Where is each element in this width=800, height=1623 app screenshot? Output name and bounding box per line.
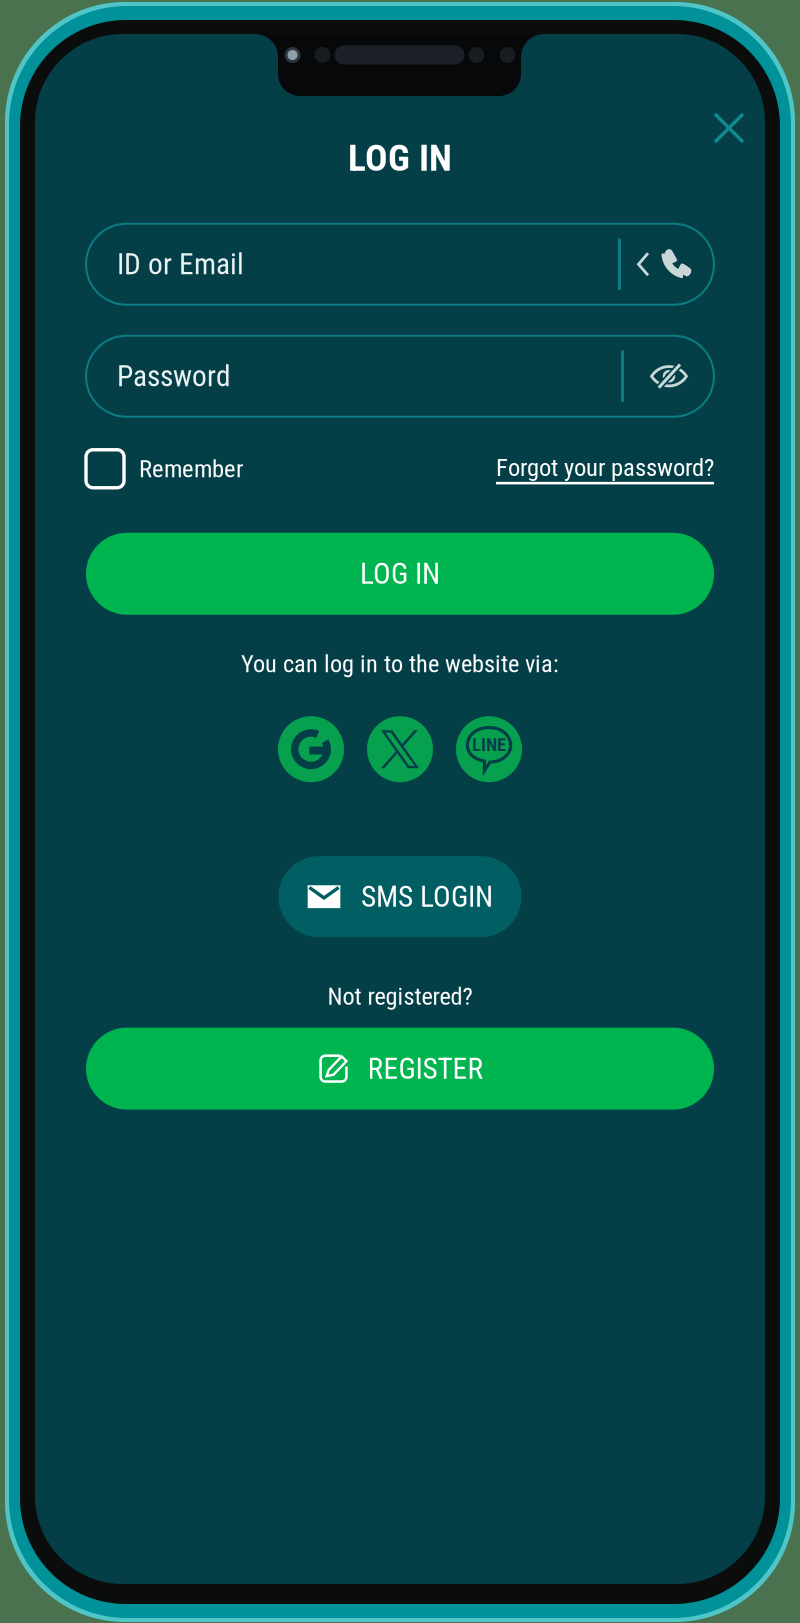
staticText: You can log in to the website via:	[241, 650, 559, 678]
staticText: Not registered?	[327, 982, 472, 1011]
button[interactable]: Log in with Google	[278, 716, 344, 782]
staticText: Password	[117, 359, 231, 393]
button[interactable]: Close	[699, 98, 759, 158]
button[interactable]: Remember	[86, 450, 243, 488]
staticText: ID or Email	[117, 247, 244, 281]
staticText: LOG IN	[360, 557, 440, 591]
staticText: LOG IN	[348, 136, 452, 180]
button[interactable]: Log in with LINE	[456, 716, 522, 782]
button[interactable]: Forgot your password?	[496, 453, 714, 484]
staticText: LINE	[472, 734, 506, 756]
button[interactable]: Log in with X	[367, 716, 433, 782]
button[interactable]: REGISTER	[86, 1028, 714, 1110]
button[interactable]: LOG IN	[86, 533, 714, 615]
staticText: Remember	[139, 454, 243, 483]
staticText: SMS LOGIN	[361, 879, 493, 914]
button[interactable]: SMS LOGIN	[278, 856, 521, 937]
staticText: Forgot your password?	[496, 453, 714, 482]
staticText: REGISTER	[367, 1051, 483, 1086]
